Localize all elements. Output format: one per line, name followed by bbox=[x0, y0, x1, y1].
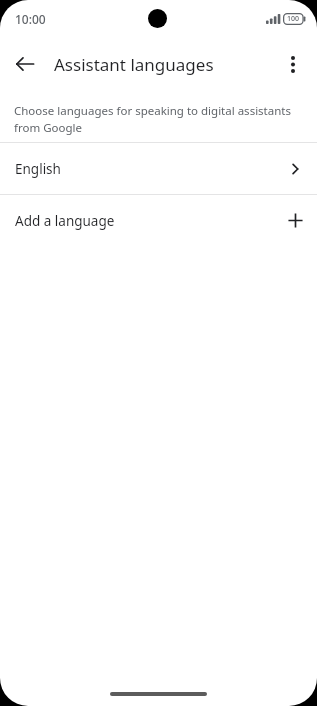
button[interactable]: Back bbox=[3, 42, 47, 86]
staticText: 100 bbox=[287, 14, 300, 24]
button[interactable]: English bbox=[0, 143, 317, 194]
button[interactable]: Add a language bbox=[0, 195, 317, 246]
staticText: English bbox=[15, 160, 287, 178]
staticText: Add a language bbox=[15, 212, 288, 230]
staticText: Assistant languages bbox=[54, 53, 214, 76]
staticText: Choose languages for speaking to digital… bbox=[14, 103, 305, 135]
staticText: 10:00 bbox=[15, 11, 46, 27]
button[interactable]: More options bbox=[272, 43, 314, 85]
